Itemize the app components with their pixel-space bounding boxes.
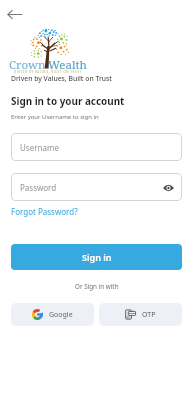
staticText: Forgot Password? xyxy=(11,206,78,217)
staticText: OTP xyxy=(142,310,156,320)
button[interactable]: Back xyxy=(3,2,27,26)
staticText: Sign in to your account xyxy=(11,94,125,107)
button[interactable]: Password xyxy=(11,173,182,201)
staticText: Username xyxy=(20,142,59,153)
staticText: Driven by Values, Built on Trust xyxy=(11,74,112,83)
staticText: Sign in xyxy=(82,251,112,263)
button[interactable]: Toggle password visibility xyxy=(161,180,176,195)
staticText: DRIVEN BY VALUES, BUILT ON TRUST xyxy=(14,70,82,74)
button[interactable]: Username xyxy=(11,133,182,161)
button[interactable]: Sign in xyxy=(11,244,182,270)
button[interactable]: OTP xyxy=(99,303,182,326)
staticText: Crown xyxy=(9,57,46,73)
staticText: Enter your Username to sign in xyxy=(11,113,99,121)
staticText: Wealth xyxy=(48,57,87,73)
button[interactable]: Forgot Password? xyxy=(11,206,78,217)
button[interactable]: Google xyxy=(11,303,94,326)
staticText: Password xyxy=(20,182,57,193)
staticText: Google xyxy=(49,310,73,320)
staticText: Or Sign in with xyxy=(75,282,119,291)
